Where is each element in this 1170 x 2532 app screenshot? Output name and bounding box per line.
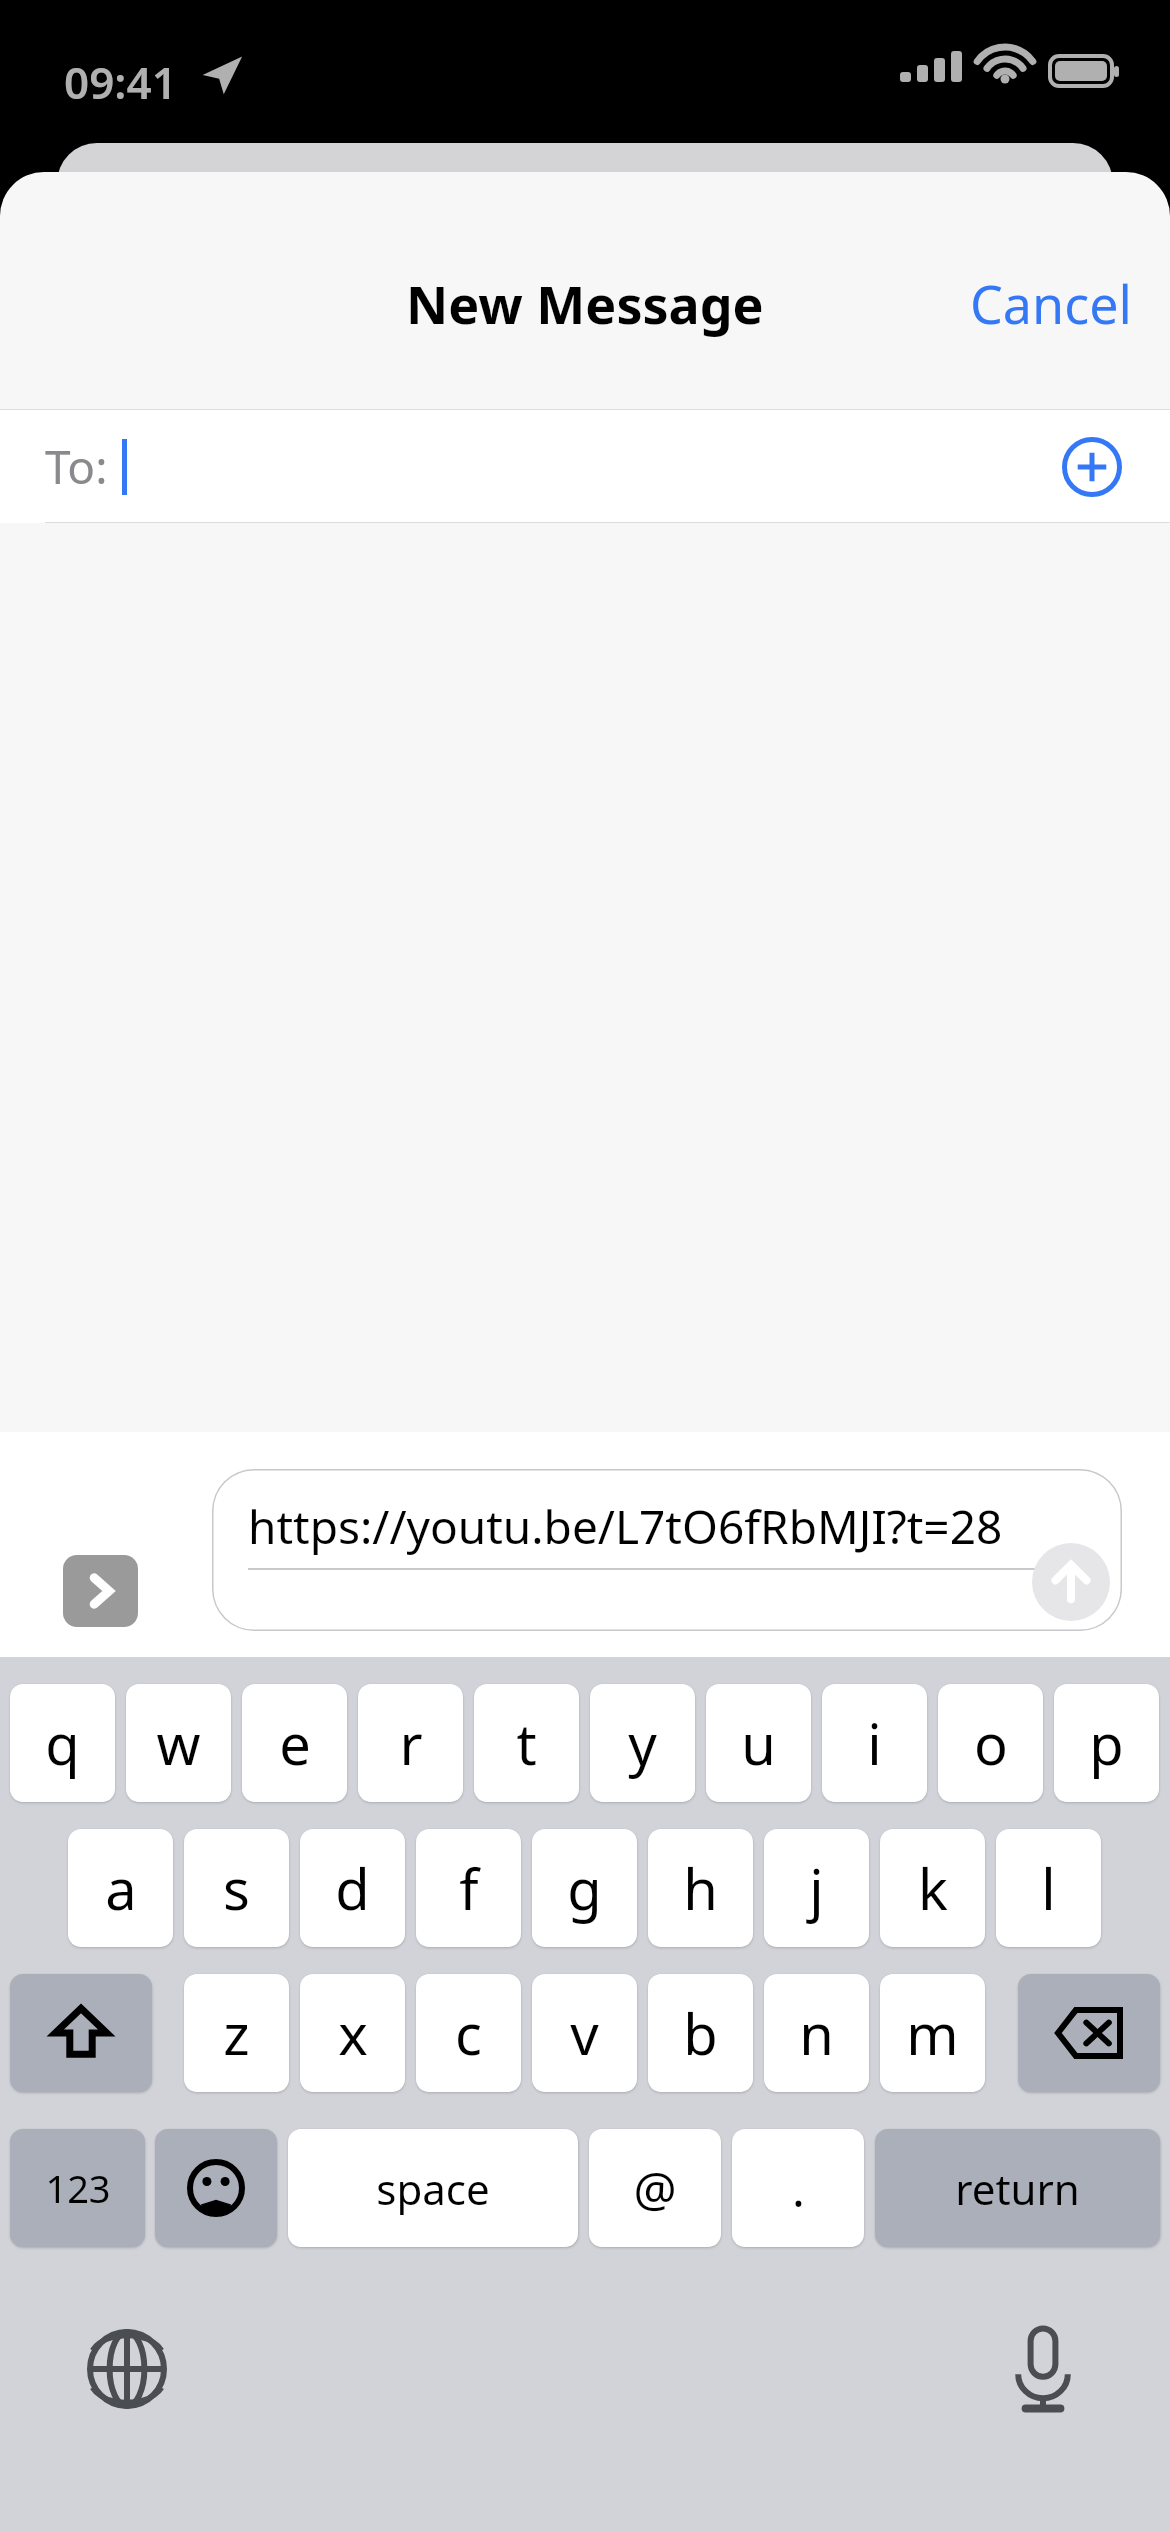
button[interactable]: t: [474, 1684, 579, 1802]
staticText: o: [974, 1705, 1008, 1781]
button[interactable]: u: [706, 1684, 811, 1802]
button[interactable]: Backspace: [1018, 1974, 1160, 2092]
button[interactable]: Cancel: [932, 250, 1170, 357]
staticText: y: [628, 1705, 657, 1781]
staticText: g: [567, 1850, 602, 1926]
button[interactable]: y: [590, 1684, 695, 1802]
button[interactable]: g: [532, 1829, 637, 1947]
button[interactable]: Change keyboard: [77, 2319, 177, 2419]
staticText: s: [223, 1850, 250, 1926]
button[interactable]: https://youtu.be/L7tO6fRbMJI?t=28: [212, 1469, 1122, 1631]
button[interactable]: p: [1054, 1684, 1159, 1802]
button[interactable]: z: [184, 1974, 289, 2092]
staticText: f: [459, 1850, 479, 1926]
staticText: space: [376, 2160, 490, 2217]
staticText: i: [867, 1705, 882, 1781]
staticText: j: [809, 1850, 824, 1926]
button[interactable]: c: [416, 1974, 521, 2092]
button[interactable]: Dictate: [993, 2319, 1093, 2419]
staticText: 09:41: [64, 52, 177, 112]
staticText: n: [799, 1995, 834, 2071]
button[interactable]: f: [416, 1829, 521, 1947]
button[interactable]: Emoji: [155, 2129, 277, 2247]
staticText: t: [516, 1705, 537, 1781]
staticText: a: [105, 1850, 137, 1926]
staticText: z: [223, 1995, 250, 2071]
button[interactable]: @: [589, 2129, 721, 2247]
staticText: .: [792, 2156, 805, 2221]
button[interactable]: s: [184, 1829, 289, 1947]
button[interactable]: o: [938, 1684, 1043, 1802]
button[interactable]: x: [300, 1974, 405, 2092]
button[interactable]: w: [126, 1684, 231, 1802]
staticText: @: [633, 2156, 677, 2221]
button[interactable]: b: [648, 1974, 753, 2092]
button[interactable]: return: [875, 2129, 1160, 2247]
button[interactable]: m: [880, 1974, 985, 2092]
button[interactable]: .: [732, 2129, 864, 2247]
button[interactable]: d: [300, 1829, 405, 1947]
button[interactable]: j: [764, 1829, 869, 1947]
staticText: Cancel: [970, 268, 1132, 339]
button[interactable]: q: [10, 1684, 115, 1802]
staticText: p: [1089, 1705, 1124, 1781]
staticText: u: [741, 1705, 776, 1781]
button[interactable]: e: [242, 1684, 347, 1802]
button[interactable]: space: [288, 2129, 578, 2247]
staticText: e: [279, 1705, 311, 1781]
button[interactable]: Add contact: [1054, 429, 1130, 505]
staticText: https://youtu.be/L7tO6fRbMJI?t=28: [248, 1495, 1003, 1558]
staticText: return: [955, 2160, 1080, 2217]
button[interactable]: l: [996, 1829, 1101, 1947]
staticText: 123: [45, 2162, 111, 2214]
button[interactable]: Expand: [63, 1555, 138, 1627]
button[interactable]: i: [822, 1684, 927, 1802]
staticText: k: [918, 1850, 948, 1926]
staticText: r: [399, 1705, 423, 1781]
button[interactable]: v: [532, 1974, 637, 2092]
staticText: q: [45, 1705, 80, 1781]
staticText: l: [1041, 1850, 1056, 1926]
button[interactable]: n: [764, 1974, 869, 2092]
staticText: To:: [45, 435, 108, 498]
button[interactable]: a: [68, 1829, 173, 1947]
staticText: New Message: [406, 268, 764, 339]
staticText: b: [683, 1995, 718, 2071]
button[interactable]: h: [648, 1829, 753, 1947]
staticText: d: [335, 1850, 370, 1926]
staticText: w: [156, 1705, 201, 1781]
staticText: v: [570, 1995, 599, 2071]
staticText: m: [906, 1995, 959, 2071]
staticText: h: [683, 1850, 718, 1926]
button[interactable]: k: [880, 1829, 985, 1947]
button[interactable]: r: [358, 1684, 463, 1802]
staticText: c: [455, 1995, 482, 2071]
staticText: x: [338, 1995, 368, 2071]
button[interactable]: Send: [1032, 1543, 1110, 1621]
button[interactable]: 123: [10, 2129, 145, 2247]
button[interactable]: Shift: [10, 1974, 152, 2092]
